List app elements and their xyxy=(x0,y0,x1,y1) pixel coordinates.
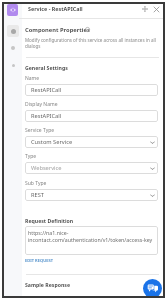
button[interactable]: Move xyxy=(140,4,150,14)
button[interactable]: Custom Service xyxy=(25,136,158,148)
staticText: EDIT REQUEST xyxy=(25,258,54,264)
button[interactable]: Tool xyxy=(7,59,19,71)
staticText: Webservice xyxy=(31,164,62,172)
staticText: Request Definition xyxy=(25,217,74,224)
button[interactable]: Chat support xyxy=(143,279,162,298)
button[interactable]: RestAPICall xyxy=(25,84,158,96)
staticText: Sub Type xyxy=(25,180,47,187)
button[interactable]: Webservice xyxy=(25,162,158,174)
button[interactable]: REST xyxy=(25,189,158,201)
staticText: Sample Response xyxy=(25,281,70,288)
staticText: RestAPICall xyxy=(31,112,62,120)
staticText: Custom Service xyxy=(31,138,73,146)
staticText: REST xyxy=(31,191,44,199)
button[interactable]: Tool xyxy=(7,25,19,37)
button[interactable]: Tool xyxy=(7,42,19,54)
staticText: RestAPICall xyxy=(31,86,62,94)
button[interactable]: RestAPICall xyxy=(25,110,158,122)
staticText: Service Type xyxy=(25,127,55,134)
button[interactable]: Close xyxy=(151,4,161,14)
staticText: https://na1.nice- incontact.com/authenti… xyxy=(28,229,153,243)
staticText: General Settings xyxy=(25,64,68,71)
button[interactable]: https://na1.nice- incontact.com/authenti… xyxy=(25,226,158,255)
staticText: Modify configurations of this service ac… xyxy=(25,37,159,49)
staticText: Name xyxy=(25,75,40,82)
staticText: Display Name xyxy=(25,101,58,108)
staticText: Type xyxy=(25,153,37,160)
button[interactable]: Code xyxy=(7,4,18,16)
staticText: Service - RestAPICall xyxy=(28,5,83,12)
button[interactable]: EDIT REQUEST xyxy=(25,258,54,264)
staticText: Component Properties xyxy=(25,26,90,34)
